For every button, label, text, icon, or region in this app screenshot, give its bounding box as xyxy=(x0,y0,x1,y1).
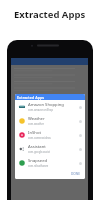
staticText: Snapseed xyxy=(28,158,48,164)
button[interactable]: Assistant xyxy=(15,142,85,156)
button[interactable]: Weather xyxy=(15,114,85,128)
button[interactable]: Amazon Shopping xyxy=(15,100,85,114)
staticText: InShot xyxy=(28,130,41,136)
staticText: Extracted Apps xyxy=(14,8,86,21)
staticText: Assistant xyxy=(28,144,46,150)
staticText: com.camerasideas xyxy=(28,136,51,140)
staticText: Amazon Shopping xyxy=(28,102,64,108)
staticText: com.weather xyxy=(28,122,44,126)
staticText: com.google.assist xyxy=(28,150,50,154)
button[interactable]: Snapseed xyxy=(15,156,85,170)
button[interactable]: InShot xyxy=(15,128,85,142)
button[interactable]: DONE xyxy=(71,170,85,176)
staticText: com.amazon.mShop xyxy=(28,108,53,112)
staticText: com.niksoftware xyxy=(28,164,49,168)
staticText: Extracted Apps xyxy=(17,95,45,100)
staticText: Weather xyxy=(28,116,45,122)
